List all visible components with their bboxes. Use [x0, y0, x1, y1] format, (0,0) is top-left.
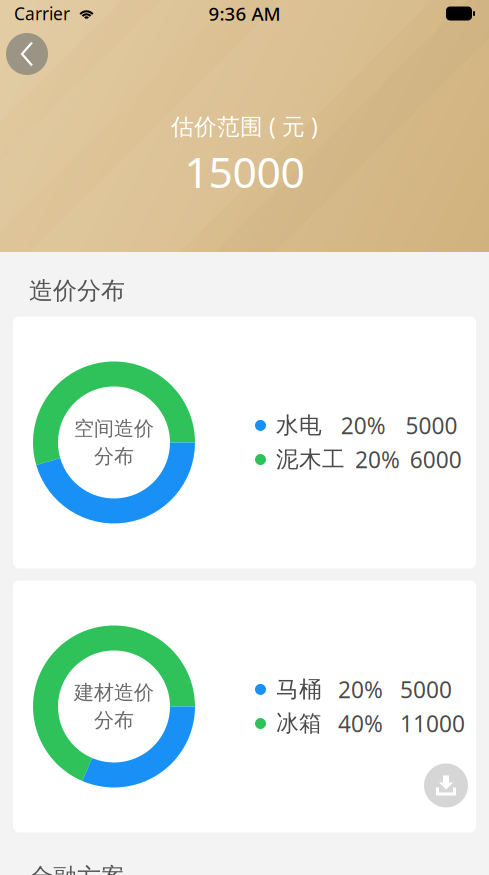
staticText: 马桶: [276, 675, 322, 703]
staticText: 水电: [276, 411, 322, 439]
staticText: 15000: [184, 143, 304, 200]
staticText: 分布: [94, 444, 134, 469]
staticText: 估价范围 ( 元 ): [171, 111, 318, 141]
staticText: 5000: [405, 410, 457, 440]
button[interactable]: Download: [424, 763, 468, 807]
staticText: 5000: [400, 674, 452, 704]
staticText: 泥木工: [276, 446, 345, 473]
staticText: 40%: [338, 708, 383, 739]
staticText: 冰箱: [276, 710, 322, 737]
staticText: 11000: [400, 708, 465, 739]
staticText: 分布: [94, 708, 134, 733]
staticText: 金融方案: [29, 862, 125, 875]
staticText: 造价分布: [29, 276, 125, 305]
staticText: 20%: [338, 674, 383, 704]
staticText: 建材造价: [74, 680, 154, 705]
staticText: 9:36 AM: [208, 1, 280, 26]
staticText: Carrier: [14, 2, 70, 25]
button[interactable]: Back: [6, 33, 48, 75]
staticText: 20%: [341, 410, 386, 440]
staticText: 20%: [355, 444, 400, 475]
staticText: 空间造价: [74, 416, 154, 441]
staticText: 6000: [410, 444, 462, 475]
